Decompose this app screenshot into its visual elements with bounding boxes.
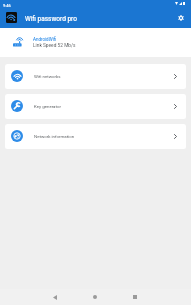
staticText: 9:46 (3, 3, 11, 8)
staticText: Network information (34, 134, 75, 139)
button[interactable]: Back (45, 289, 65, 305)
staticText: Wifi networks (34, 74, 61, 79)
button[interactable]: Key generator (5, 94, 186, 119)
button[interactable]: Network information (5, 124, 186, 149)
button[interactable]: Recents (125, 289, 145, 305)
staticText: Link Speed 52 Mb/s (33, 43, 76, 49)
button[interactable]: Home (85, 289, 105, 305)
button[interactable]: Settings (174, 11, 188, 25)
staticText: AndroidWifi (33, 37, 57, 42)
button[interactable]: Wifi networks (5, 64, 186, 89)
staticText: Key generator (34, 104, 61, 109)
staticText: Wifi password pro (25, 15, 77, 23)
